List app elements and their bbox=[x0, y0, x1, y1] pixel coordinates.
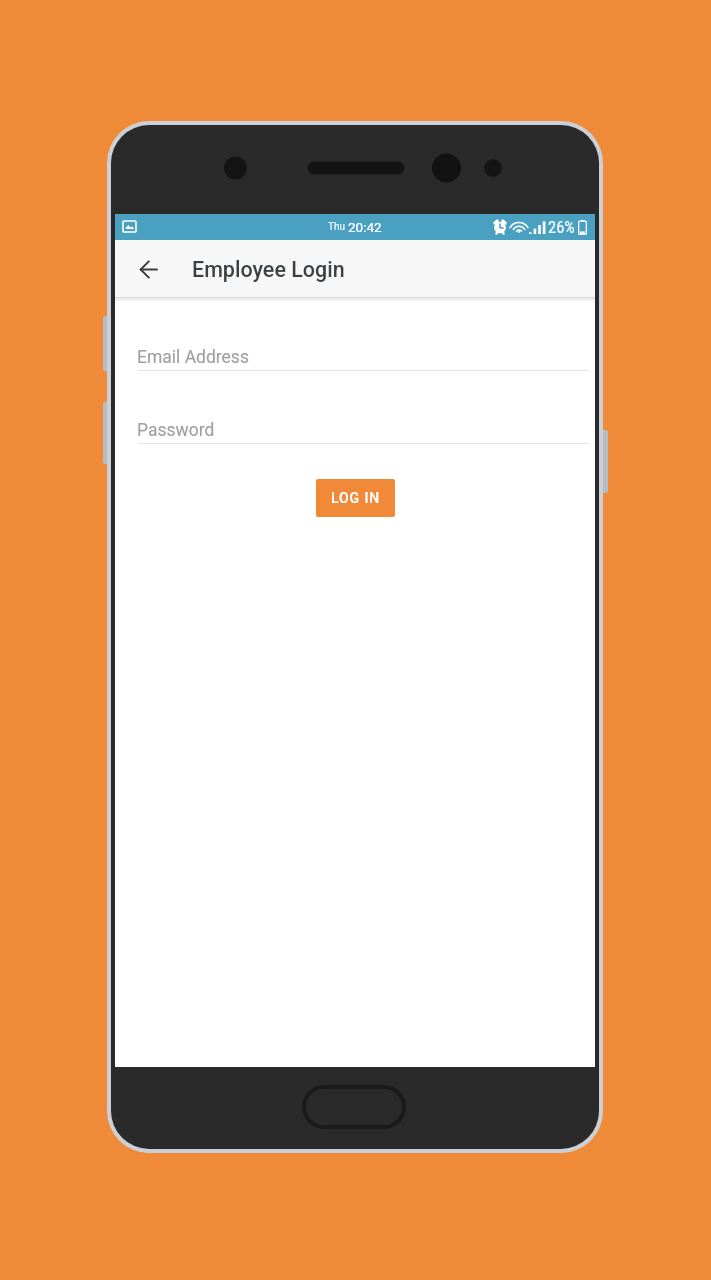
staticText: LOG IN bbox=[331, 490, 381, 506]
staticText: Email Address bbox=[137, 347, 249, 368]
staticText: Thu bbox=[328, 221, 348, 233]
staticText: 20:42 bbox=[348, 219, 382, 235]
button[interactable]: Back bbox=[126, 247, 170, 291]
staticText: Password bbox=[137, 420, 215, 441]
staticText: 26% bbox=[548, 218, 575, 237]
button[interactable]: LOG IN bbox=[316, 479, 395, 517]
staticText: Employee Login bbox=[192, 257, 345, 282]
